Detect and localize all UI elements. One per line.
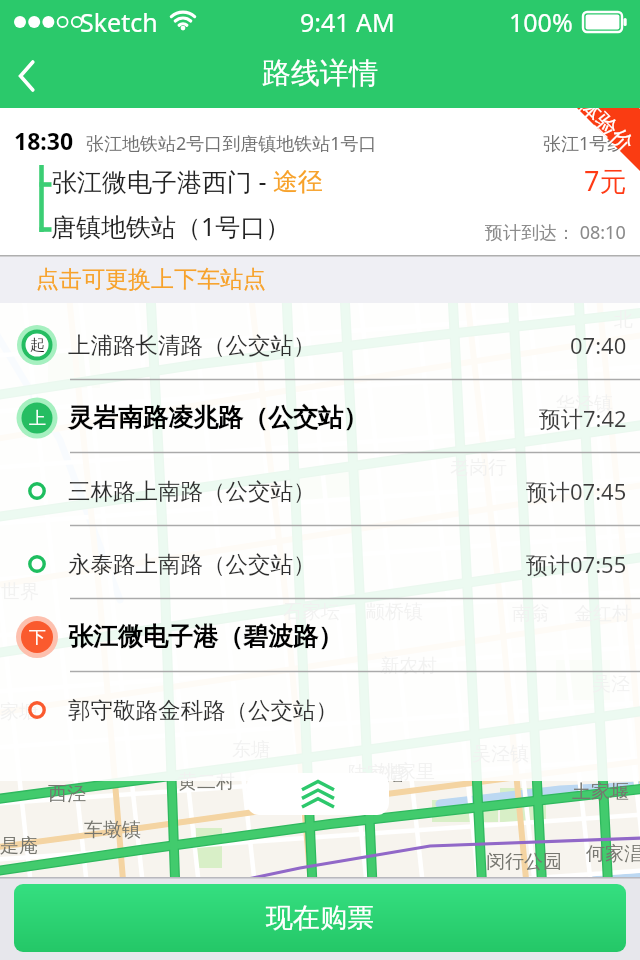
staticText: 闵行公园 — [486, 850, 562, 874]
staticText: 预计7:42 — [539, 403, 627, 433]
button[interactable]: 点击可更换上下车站点 — [0, 255, 640, 303]
staticText: 预计07:45 — [526, 476, 627, 506]
staticText: 点击可更换上下车站点 — [36, 265, 266, 294]
staticText: 西泾 — [48, 782, 86, 806]
staticText: 三林路上南路（公交站） — [68, 477, 316, 505]
staticText: 9:41 AM — [300, 5, 395, 39]
staticText: 预计07:55 — [526, 549, 627, 579]
staticText: 张江微电子港西门 - — [52, 164, 267, 198]
staticText: 下 — [29, 627, 46, 648]
staticText: 张江微电子港（碧波路） — [68, 621, 343, 652]
staticText: 体验价 — [573, 108, 639, 158]
staticText: 张江1号线 — [543, 131, 626, 156]
staticText: 起 — [30, 336, 45, 355]
staticText: 陆家漕 — [348, 762, 405, 786]
staticText: 华泾镇 — [556, 392, 613, 416]
staticText: 上 — [29, 408, 46, 429]
button[interactable]: 永泰路上南路（公交站） — [0, 527, 640, 600]
staticText: 100% — [509, 5, 573, 39]
button[interactable]: 上 — [0, 381, 640, 454]
staticText: 途径 — [273, 166, 323, 197]
button[interactable]: Expand route list — [247, 773, 389, 815]
staticText: 是庵 — [0, 834, 38, 858]
staticText: 颛桥镇 — [366, 600, 423, 624]
staticText: 永泰路上南路（公交站） — [68, 550, 316, 578]
staticText: 灵岩南路凌兆路（公交站） — [68, 402, 368, 433]
staticText: 张江地铁站2号口到唐镇地铁站1号口 — [86, 131, 377, 156]
staticText: 黄二村 — [178, 770, 235, 794]
staticText: 路线详情 — [262, 55, 378, 92]
staticText: 姚家里 — [378, 760, 435, 784]
staticText: 土家堰 — [572, 780, 629, 804]
staticText: 老岗行 — [450, 456, 507, 480]
staticText: 预计到达： 08:10 — [485, 220, 626, 245]
button[interactable]: Back — [0, 44, 56, 108]
button[interactable]: 三林路上南路（公交站） — [0, 454, 640, 527]
staticText: 新农村 — [380, 654, 437, 678]
staticText: 何家淐 — [586, 842, 640, 866]
button[interactable]: 下 — [0, 600, 640, 673]
staticText: 游世界 — [0, 580, 39, 604]
button[interactable]: 郭守敬路金科路（公交站） — [0, 673, 640, 746]
staticText: 北 — [614, 308, 633, 332]
staticText: 金红村 — [574, 602, 631, 626]
staticText: 上浦路长清路（公交站） — [68, 331, 316, 359]
staticText: 车墩镇 — [84, 818, 141, 842]
staticText: 吴泾镇 — [472, 742, 529, 766]
staticText: 07:40 — [570, 330, 627, 360]
staticText: 现在购票 — [266, 901, 374, 935]
staticText: 吴泾 — [592, 672, 630, 696]
button[interactable]: 现在购票 — [14, 884, 626, 952]
staticText: 家塘 — [0, 700, 38, 724]
staticText: 东塘 — [232, 738, 270, 762]
staticText: 郭守敬路金科路（公交站） — [68, 696, 338, 724]
staticText: 18:30 — [14, 125, 74, 156]
staticText: 唐镇地铁站（1号口） — [51, 209, 291, 243]
button[interactable]: 起 — [0, 308, 640, 381]
staticText: Sketch — [80, 5, 158, 39]
staticText: 7元 — [584, 162, 627, 199]
staticText: 石家坛 — [283, 600, 340, 624]
staticText: 南翁 — [512, 602, 550, 626]
